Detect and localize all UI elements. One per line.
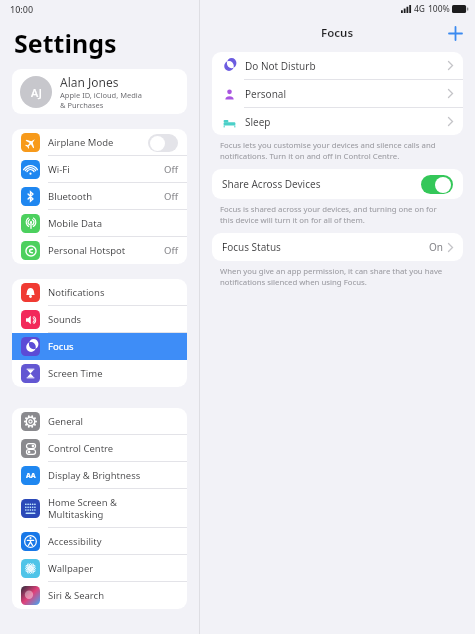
staticText: General [48, 415, 178, 428]
staticText: Sounds [48, 313, 178, 326]
button[interactable]: Focus Status [212, 233, 463, 261]
staticText: Screen Time [48, 367, 178, 380]
staticText: Off [164, 163, 178, 176]
staticText: 4G [414, 3, 426, 15]
button[interactable]: Do Not Disturb [212, 52, 463, 79]
button[interactable]: Personal Hotspot [12, 237, 187, 264]
staticText: Bluetooth [48, 190, 164, 203]
staticText: Focus [48, 340, 178, 353]
button[interactable]: Notifications [12, 279, 187, 306]
staticText: Off [164, 244, 178, 257]
button[interactable]: Control Centre [12, 435, 187, 462]
staticText: Accessibility [48, 535, 178, 548]
button[interactable]: AA [12, 462, 187, 489]
staticText: Apple ID, iCloud, Media & Purchases [60, 90, 142, 110]
staticText: Mobile Data [48, 217, 178, 230]
staticText: Airplane Mode [48, 136, 148, 149]
button[interactable]: Focus [12, 333, 187, 360]
staticText: Home Screen & Multitasking [48, 496, 178, 521]
staticText: Share Across Devices [222, 177, 421, 191]
staticText: On [429, 240, 443, 254]
staticText: Focus is shared across your devices, and… [220, 204, 437, 226]
button[interactable]: Personal [212, 80, 463, 107]
button[interactable]: Bluetooth [12, 183, 187, 210]
button[interactable]: General [12, 408, 187, 435]
button[interactable]: Toggle on [421, 175, 453, 194]
staticText: 100% [428, 3, 450, 15]
staticText: Notifications [48, 286, 178, 299]
staticText: AJ [31, 85, 42, 100]
staticText: Sleep [245, 115, 448, 129]
staticText: Wallpaper [48, 562, 178, 575]
button[interactable]: Screen Time [12, 360, 187, 387]
staticText: Off [164, 190, 178, 203]
staticText: Focus lets you customise your devices an… [220, 140, 436, 162]
button[interactable]: Airplane Mode [12, 129, 187, 156]
staticText: Personal Hotspot [48, 244, 164, 257]
button[interactable]: Mobile Data [12, 210, 187, 237]
button[interactable]: Wallpaper [12, 555, 187, 582]
staticText: Control Centre [48, 442, 178, 455]
staticText: Wi-Fi [48, 163, 164, 176]
button[interactable]: Sleep [212, 108, 463, 135]
staticText: When you give an app permission, it can … [220, 266, 443, 288]
staticText: Siri & Search [48, 589, 178, 602]
staticText: Do Not Disturb [245, 59, 448, 73]
staticText: 10:00 [10, 3, 34, 15]
button[interactable]: Siri & Search [12, 582, 187, 609]
button[interactable]: Sounds [12, 306, 187, 333]
button[interactable]: Wi-Fi [12, 156, 187, 183]
button[interactable]: Share Across Devices [212, 169, 463, 199]
button[interactable]: Add Focus [443, 21, 467, 45]
staticText: AA [26, 471, 36, 481]
staticText: Focus Status [222, 240, 429, 254]
staticText: Focus [321, 25, 354, 41]
staticText: Settings [14, 26, 117, 60]
button[interactable]: Home Screen & Multitasking [12, 489, 187, 528]
button[interactable]: AJ [12, 69, 187, 114]
staticText: Personal [245, 87, 448, 101]
staticText: Alan Jones [60, 74, 119, 90]
staticText: Display & Brightness [48, 469, 178, 482]
button[interactable]: Accessibility [12, 528, 187, 555]
button[interactable]: Toggle off [148, 134, 178, 152]
